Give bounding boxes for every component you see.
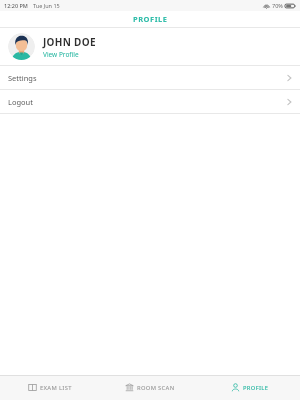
button[interactable]: Profile photo bbox=[0, 28, 300, 65]
staticText: Logout bbox=[8, 97, 33, 107]
staticText: EXAM LIST bbox=[40, 384, 72, 392]
staticText: 70% bbox=[272, 2, 283, 9]
staticText: ROOM SCAN bbox=[137, 384, 175, 392]
staticText: 12:20 PM bbox=[4, 2, 28, 9]
button[interactable]: ROOM SCAN bbox=[100, 375, 200, 400]
staticText: PROFILE bbox=[133, 14, 168, 24]
button[interactable]: EXAM LIST bbox=[0, 375, 100, 400]
staticText: Settings bbox=[8, 73, 37, 83]
button[interactable]: Logout bbox=[0, 90, 300, 113]
staticText: JOHN DOE bbox=[43, 35, 96, 49]
staticText: Tue Jun 15 bbox=[33, 2, 60, 9]
staticText: PROFILE bbox=[243, 384, 269, 392]
staticText: View Profile bbox=[43, 50, 79, 59]
button[interactable]: Settings bbox=[0, 66, 300, 89]
button[interactable]: PROFILE bbox=[200, 375, 300, 400]
other: Profile photo bbox=[8, 33, 35, 60]
